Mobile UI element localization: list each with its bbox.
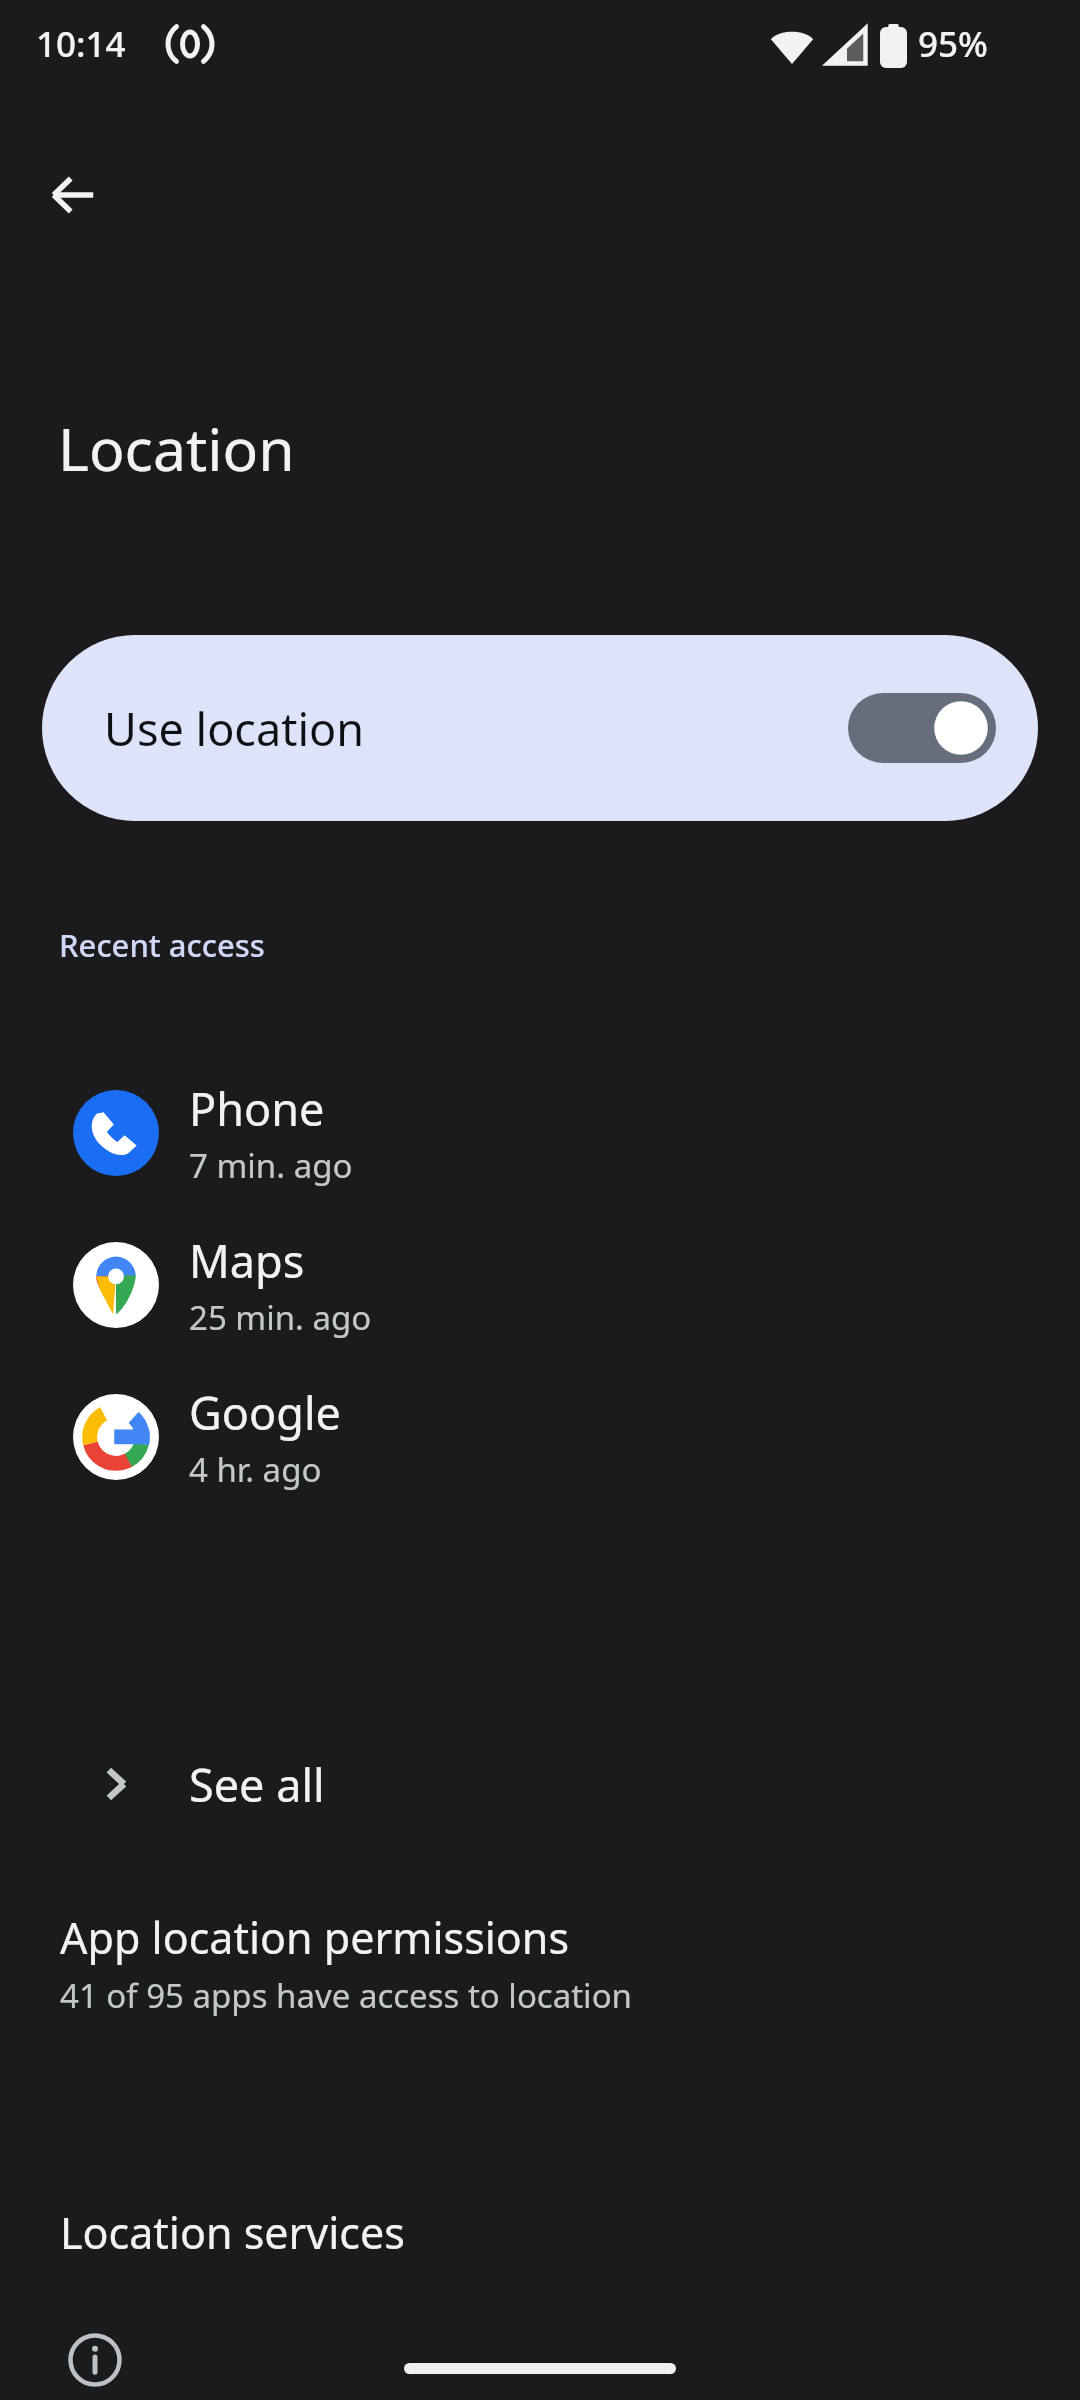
- staticText: App location permissions: [60, 1908, 570, 1967]
- staticText: Recent access: [59, 924, 265, 966]
- staticText: 41 of 95 apps have access to location: [60, 1973, 632, 2018]
- staticText: Maps: [189, 1230, 305, 1291]
- staticText: 7 min. ago: [189, 1143, 353, 1188]
- button[interactable]: Use location: [42, 635, 1038, 821]
- staticText: Location: [58, 408, 295, 488]
- button[interactable]: Location services: [42, 2180, 1038, 2284]
- button[interactable]: Information: [43, 2308, 147, 2400]
- staticText: 95%: [918, 20, 988, 68]
- staticText: Phone: [189, 1078, 325, 1139]
- staticText: See all: [189, 1754, 325, 1815]
- staticText: Use location: [104, 698, 365, 759]
- staticText: 4 hr. ago: [189, 1447, 322, 1492]
- button[interactable]: Phone: [42, 1063, 1038, 1203]
- button[interactable]: App location permissions: [42, 1902, 1038, 2028]
- staticText: Location services: [60, 2203, 405, 2262]
- button[interactable]: Maps: [42, 1215, 1038, 1355]
- staticText: 10:14: [36, 20, 126, 68]
- button[interactable]: Back: [25, 147, 121, 243]
- staticText: Google: [189, 1382, 341, 1443]
- button[interactable]: See all: [42, 1728, 1038, 1840]
- button[interactable]: Google: [42, 1367, 1038, 1507]
- staticText: 25 min. ago: [189, 1295, 372, 1340]
